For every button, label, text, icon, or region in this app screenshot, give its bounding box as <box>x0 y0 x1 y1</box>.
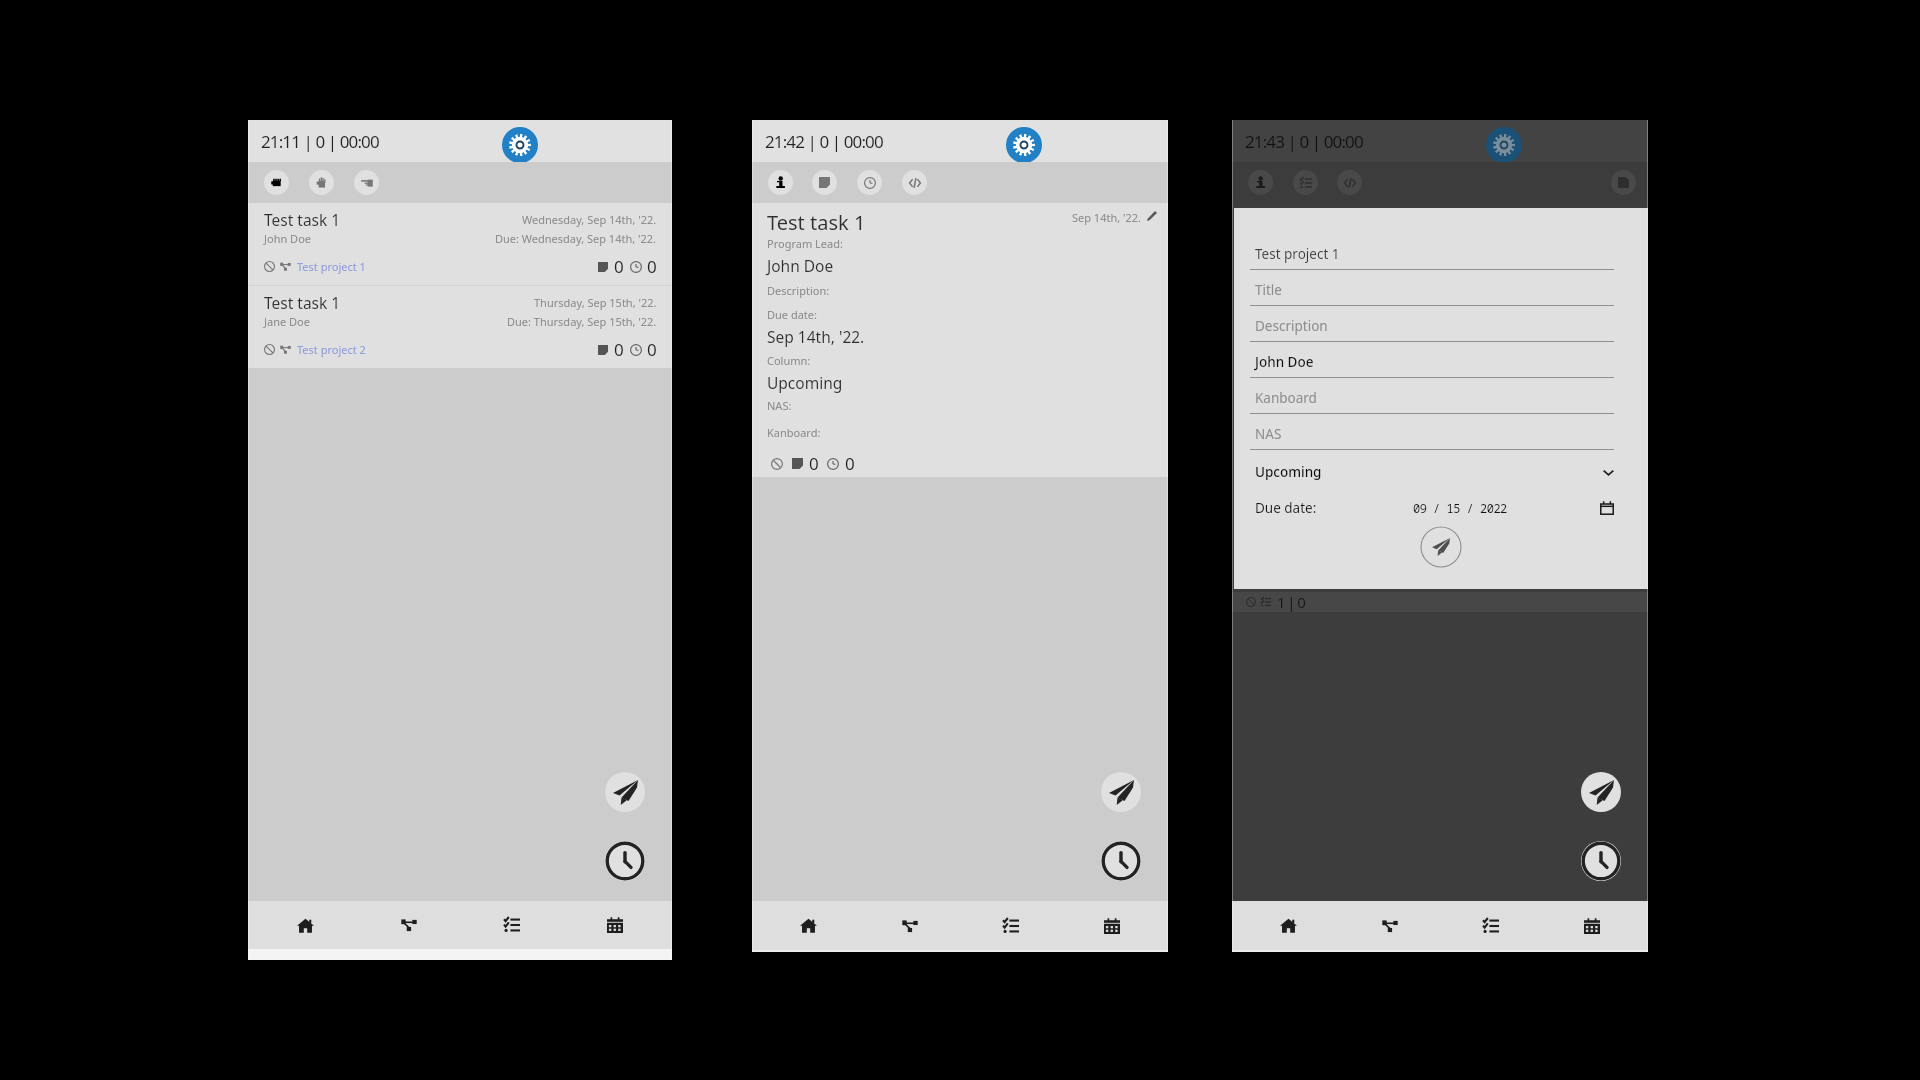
button[interactable]: Tasks <box>960 901 1061 950</box>
staticText: 0 <box>809 452 819 475</box>
staticText: John Doe <box>1255 353 1314 371</box>
button[interactable]: Home <box>254 901 357 949</box>
button[interactable]: Grab <box>264 170 289 195</box>
button[interactable]: Title <box>1250 270 1614 306</box>
staticText: Description <box>1255 317 1328 335</box>
staticText: John Doe <box>767 255 834 276</box>
staticText: Upcoming <box>1255 463 1322 481</box>
staticText: Jane Doe <box>264 314 310 329</box>
button[interactable]: Test task 1 <box>248 203 672 285</box>
button[interactable]: Code <box>1337 170 1362 195</box>
staticText: NAS <box>1255 425 1282 443</box>
staticText: Sep 14th, '22. <box>767 326 865 347</box>
button[interactable]: Settings <box>1486 127 1522 163</box>
staticText: Sep 14th, '22. <box>1072 210 1142 225</box>
button[interactable]: Code <box>902 170 927 195</box>
staticText: 21:11 | 0 | 00:00 <box>261 130 379 153</box>
button[interactable]: Calendar <box>1541 901 1642 950</box>
staticText: Test project 2 <box>297 342 366 357</box>
staticText: Column: <box>767 353 811 368</box>
staticText: Wednesday, Sep 14th, '22. <box>522 212 657 227</box>
button[interactable]: Send <box>605 772 645 812</box>
staticText: 1 | 0 <box>1277 592 1305 612</box>
button[interactable]: Projects <box>859 901 960 950</box>
staticText: Thursday, Sep 15th, '22. <box>534 295 657 310</box>
staticText: Due: Wednesday, Sep 14th, '22. <box>495 231 657 246</box>
staticText: Test task 1 <box>264 292 341 313</box>
staticText: Due date: <box>1255 499 1317 517</box>
button[interactable]: Info <box>768 170 793 195</box>
staticText: Test project 1 <box>1255 245 1340 263</box>
staticText: Due date: <box>767 307 817 322</box>
button[interactable]: Document <box>1611 170 1636 195</box>
button[interactable]: Test project 1 <box>1250 234 1614 270</box>
button[interactable]: Pointer <box>354 170 379 195</box>
staticText: NAS: <box>767 398 792 413</box>
button[interactable]: Settings <box>1006 127 1042 163</box>
staticText: Kanboard <box>1255 389 1317 407</box>
button[interactable]: Tasks <box>460 901 563 949</box>
staticText: Description: <box>767 283 830 298</box>
button[interactable]: Timer <box>605 841 645 881</box>
staticText: 21:42 | 0 | 00:00 <box>765 130 883 153</box>
button[interactable]: Send <box>1101 772 1141 812</box>
button[interactable]: Time <box>857 170 882 195</box>
staticText: 0 <box>647 338 657 361</box>
button[interactable]: Notes <box>812 170 837 195</box>
staticText: Test task 1 <box>767 209 866 236</box>
button[interactable]: Projects <box>1339 901 1440 950</box>
button[interactable]: Send <box>1581 772 1621 812</box>
button[interactable]: Tasks <box>1293 170 1318 195</box>
staticText: 21:43 | 0 | 00:00 <box>1245 130 1363 153</box>
staticText: 0 <box>647 255 657 278</box>
staticText: Test task 1 <box>264 209 341 230</box>
button[interactable]: Calendar <box>563 901 666 949</box>
staticText: 0 <box>845 452 855 475</box>
button[interactable]: Projects <box>357 901 460 949</box>
button[interactable]: Timer <box>1101 841 1141 881</box>
button[interactable]: Home <box>1238 901 1339 950</box>
staticText: 0 <box>614 338 624 361</box>
staticText: John Doe <box>264 231 312 246</box>
staticText: Title <box>1255 281 1282 299</box>
staticText: Test project 1 <box>297 259 366 274</box>
button[interactable]: Settings <box>502 127 538 163</box>
staticText: Upcoming <box>767 372 843 393</box>
button[interactable]: Test task 1 <box>248 286 672 368</box>
button[interactable]: John Doe <box>1250 342 1614 378</box>
button[interactable]: Submit <box>1420 526 1462 568</box>
staticText: Kanboard: <box>767 425 821 440</box>
button[interactable]: Calendar <box>1061 901 1162 950</box>
staticText: 0 <box>614 255 624 278</box>
staticText: Program Lead: <box>767 236 843 251</box>
button[interactable]: Info <box>1248 170 1273 195</box>
button[interactable]: Upcoming <box>1255 463 1614 481</box>
button[interactable]: Kanboard <box>1250 378 1614 414</box>
button[interactable]: NAS <box>1250 414 1614 450</box>
button[interactable]: Tasks <box>1440 901 1541 950</box>
button[interactable]: Open hand <box>309 170 334 195</box>
button[interactable]: Home <box>758 901 859 950</box>
staticText: 09 / 15 / 2022 <box>1413 500 1507 516</box>
staticText: Due: Thursday, Sep 15th, '22. <box>507 314 657 329</box>
button[interactable]: Timer <box>1581 841 1621 881</box>
button[interactable]: Description <box>1250 306 1614 342</box>
